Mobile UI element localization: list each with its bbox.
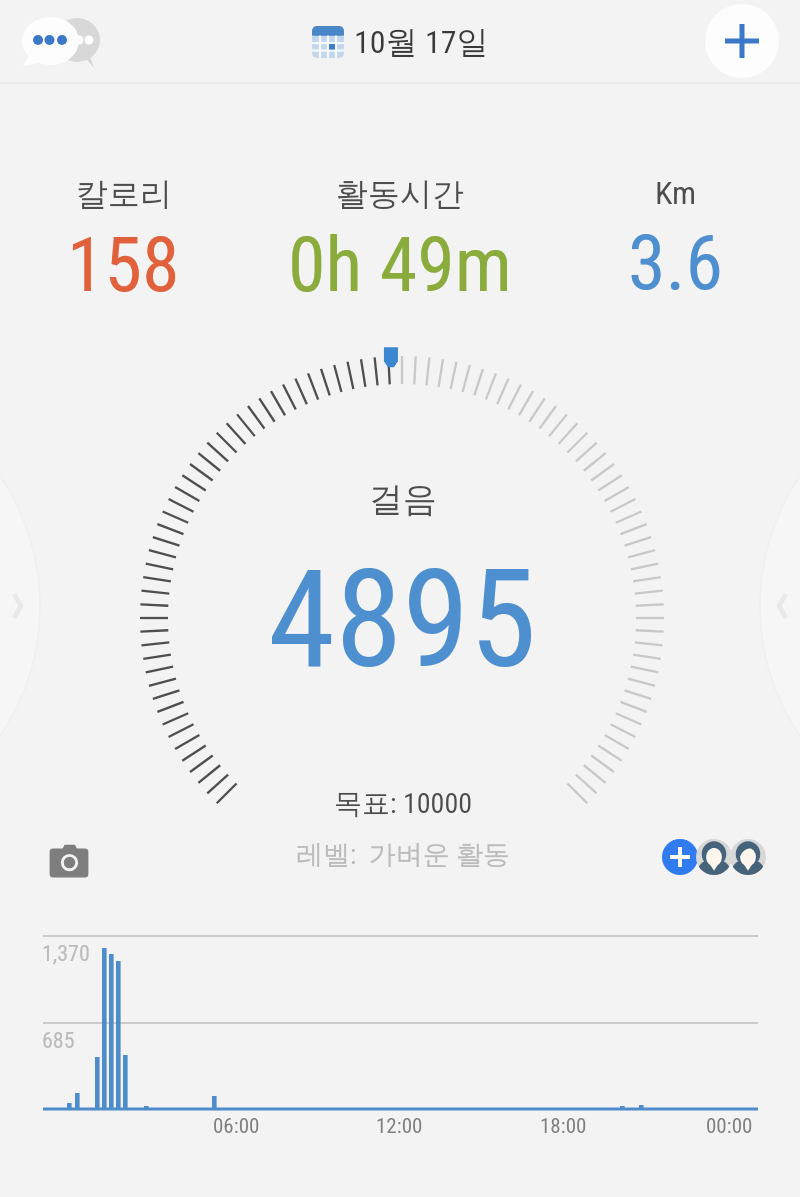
button[interactable]: 06:00 — [213, 1114, 260, 1139]
staticText: 685 — [42, 1028, 75, 1054]
staticText: 0h 49m — [288, 220, 512, 309]
staticText: 12:00 — [376, 1114, 423, 1139]
button[interactable]: Camera — [44, 840, 94, 882]
button[interactable]: 칼로리 — [67, 174, 180, 309]
staticText: 06:00 — [213, 1114, 260, 1139]
button[interactable]: 활동시간 — [288, 174, 512, 309]
staticText: 18:00 — [540, 1114, 587, 1139]
button[interactable]: 10월 17일 — [312, 22, 489, 62]
staticText: 00:00 — [706, 1114, 753, 1139]
button[interactable]: 18:00 — [540, 1114, 587, 1139]
staticText: 걸음 — [369, 478, 437, 521]
button[interactable]: 00:00 — [706, 1114, 753, 1139]
staticText: 10월 17일 — [354, 22, 489, 62]
staticText: 4895 — [268, 540, 537, 699]
button[interactable]: Messages — [14, 10, 106, 74]
button[interactable]: 12:00 — [376, 1114, 423, 1139]
staticText: 레벨: 가벼운 활동 — [296, 838, 510, 872]
button[interactable]: Friend — [696, 839, 732, 875]
staticText: 활동시간 — [336, 174, 464, 214]
staticText: 158 — [67, 220, 180, 309]
staticText: 3.6 — [628, 218, 724, 307]
button[interactable]: Add — [705, 4, 779, 78]
staticText: 1,370 — [42, 941, 90, 967]
button[interactable]: Friend — [730, 839, 766, 875]
staticText: Km — [655, 174, 697, 212]
button[interactable]: Add friend — [662, 839, 698, 875]
staticText: 목표: 10000 — [334, 786, 473, 821]
button[interactable]: Km — [628, 174, 724, 307]
button[interactable]: Steps 4895, goal 10000 — [172, 400, 632, 760]
staticText: 칼로리 — [76, 174, 172, 214]
